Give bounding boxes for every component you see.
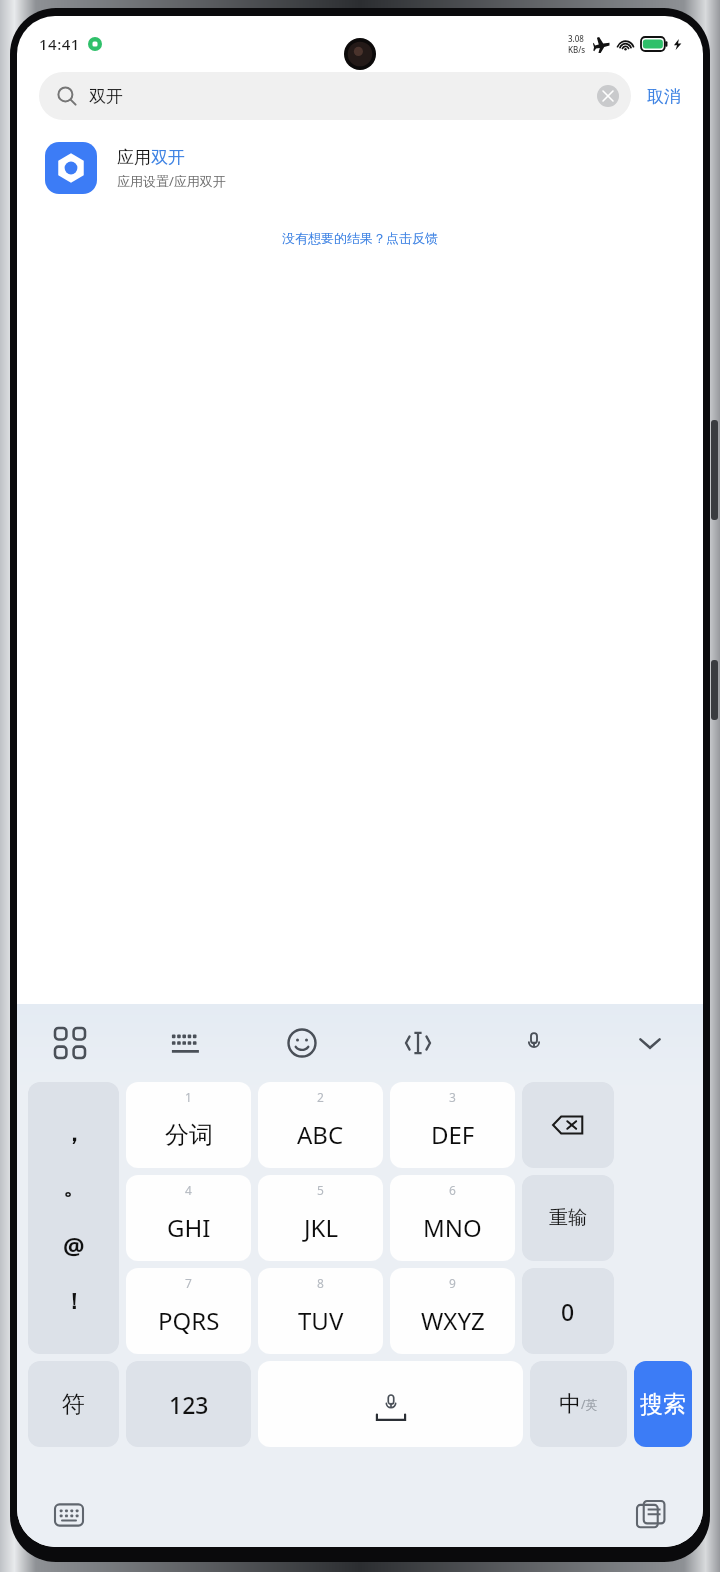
button[interactable]: 2 xyxy=(258,1082,383,1168)
staticText: 2 xyxy=(317,1089,324,1105)
button[interactable]: Apps xyxy=(47,1020,93,1066)
staticText: 9 xyxy=(449,1275,456,1291)
staticText: JKL xyxy=(304,1211,338,1244)
button[interactable]: 5 xyxy=(258,1175,383,1261)
button[interactable]: Hide keyboard xyxy=(627,1020,673,1066)
staticText: ！ xyxy=(63,1288,85,1316)
button[interactable]: 取消 xyxy=(645,80,683,113)
staticText: 取消 xyxy=(647,86,681,107)
staticText: 3 xyxy=(449,1089,456,1105)
button[interactable]: 1 xyxy=(126,1082,251,1168)
button[interactable]: 双开 xyxy=(39,72,631,120)
staticText: PQRS xyxy=(158,1304,220,1337)
button[interactable]: Clipboard xyxy=(631,1495,671,1535)
staticText: GHI xyxy=(167,1211,211,1244)
staticText: 8 xyxy=(317,1275,324,1291)
button[interactable]: 7 xyxy=(126,1268,251,1354)
staticText: 5 xyxy=(317,1182,324,1198)
staticText: 123 xyxy=(169,1389,209,1420)
button[interactable]: Space xyxy=(258,1361,523,1447)
button[interactable]: Chinese English toggle xyxy=(530,1361,627,1447)
button[interactable]: 9 xyxy=(390,1268,515,1354)
staticText: ， xyxy=(63,1120,85,1148)
staticText: WXYZ xyxy=(421,1304,485,1337)
staticText: @ xyxy=(63,1229,85,1262)
button[interactable]: Text edit xyxy=(395,1020,441,1066)
staticText: DEF xyxy=(431,1118,475,1151)
button[interactable]: Backspace xyxy=(522,1082,614,1168)
button[interactable]: Voice input xyxy=(511,1020,557,1066)
button[interactable]: Re-enter xyxy=(522,1175,614,1261)
staticText: 没有想要的结果？点击反馈 xyxy=(282,230,438,246)
button[interactable]: 3 xyxy=(390,1082,515,1168)
staticText: 应用设置/应用双开 xyxy=(117,172,226,190)
staticText: MNO xyxy=(423,1211,482,1244)
staticText: ABC xyxy=(297,1118,344,1151)
staticText: 0 xyxy=(561,1296,575,1327)
staticText: 14:41 xyxy=(39,34,80,54)
button[interactable]: Emoji xyxy=(279,1020,325,1066)
button[interactable]: 没有想要的结果？点击反馈 xyxy=(272,226,448,250)
button[interactable]: 8 xyxy=(258,1268,383,1354)
button[interactable]: Clear xyxy=(597,85,619,107)
staticText: 7 xyxy=(185,1275,192,1291)
staticText: TUV xyxy=(298,1304,344,1337)
button[interactable]: Zero xyxy=(522,1268,614,1354)
staticText: 重输 xyxy=(549,1206,587,1230)
staticText: KB/s xyxy=(568,44,586,55)
staticText: 6 xyxy=(449,1182,456,1198)
staticText: 1 xyxy=(185,1089,192,1105)
button[interactable]: 4 xyxy=(126,1175,251,1261)
button[interactable]: Switch keyboard xyxy=(49,1495,89,1535)
staticText: 搜索 xyxy=(640,1390,686,1419)
staticText: 符 xyxy=(62,1390,85,1419)
button[interactable]: Numbers xyxy=(126,1361,251,1447)
staticText: 4 xyxy=(185,1182,192,1198)
staticText: 。 xyxy=(63,1174,85,1202)
button[interactable]: Symbols xyxy=(28,1361,119,1447)
button[interactable]: Keyboard layout xyxy=(163,1020,209,1066)
staticText: 中 xyxy=(559,1390,581,1418)
button[interactable]: 应用双开 xyxy=(17,136,703,200)
button[interactable]: 6 xyxy=(390,1175,515,1261)
staticText: 双开 xyxy=(89,86,123,107)
staticText: 应用双开 xyxy=(117,147,185,168)
button[interactable]: Search xyxy=(634,1361,692,1447)
staticText: /英 xyxy=(581,1396,598,1412)
staticText: 分词 xyxy=(165,1120,213,1150)
button[interactable]: Punctuation xyxy=(28,1082,119,1354)
staticText: 3.08 xyxy=(568,33,584,44)
